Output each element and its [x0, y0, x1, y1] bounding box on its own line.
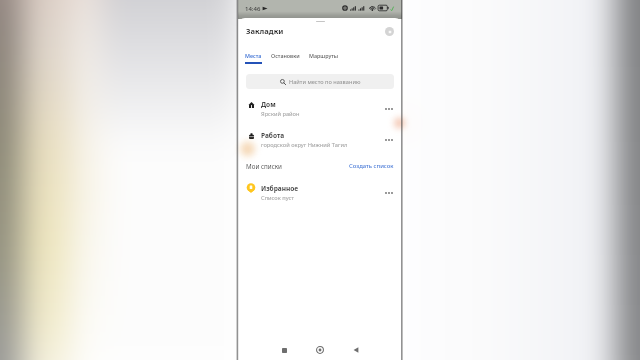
- button[interactable]: More options: [382, 102, 395, 115]
- staticText: Ярский район: [261, 110, 300, 118]
- button[interactable]: Recents: [277, 343, 291, 357]
- button[interactable]: Найти место по названию: [246, 74, 394, 89]
- button[interactable]: Избранное: [238, 177, 402, 208]
- button[interactable]: Close: [385, 27, 394, 36]
- staticText: Дом: [261, 100, 276, 109]
- staticText: Закладки: [246, 26, 284, 36]
- button[interactable]: More options: [382, 186, 395, 199]
- button[interactable]: Работа: [238, 124, 402, 155]
- staticText: Маршруты: [309, 52, 339, 59]
- staticText: Создать список: [349, 162, 394, 170]
- staticText: Остановки: [271, 52, 300, 59]
- button[interactable]: Места: [245, 52, 262, 64]
- staticText: Работа: [261, 131, 285, 140]
- button[interactable]: Дом: [238, 93, 402, 124]
- staticText: Найти место по названию: [289, 78, 361, 86]
- button[interactable]: Остановки: [271, 52, 300, 64]
- staticText: Список пуст: [261, 194, 294, 202]
- staticText: 14:46: [245, 5, 261, 13]
- button[interactable]: Back: [349, 343, 363, 357]
- staticText: городской округ Нижний Тагил: [261, 141, 348, 149]
- staticText: Избранное: [261, 184, 299, 193]
- button[interactable]: Маршруты: [309, 52, 339, 64]
- staticText: Мои списки: [246, 162, 282, 171]
- button[interactable]: More options: [382, 133, 395, 146]
- button[interactable]: Создать список: [349, 162, 394, 170]
- button[interactable]: Home: [313, 343, 327, 357]
- staticText: Места: [245, 52, 262, 59]
